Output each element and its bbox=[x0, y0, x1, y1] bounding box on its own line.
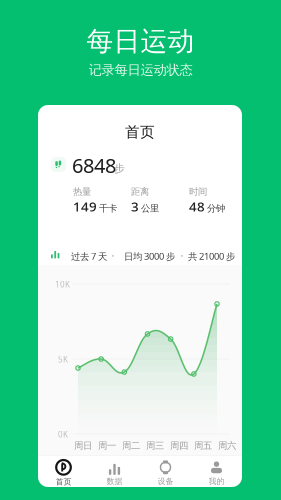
staticText: 周三 bbox=[146, 440, 164, 451]
staticText: 3 bbox=[131, 197, 139, 215]
staticText: 周日 bbox=[74, 440, 92, 451]
staticText: 时间 bbox=[189, 186, 207, 197]
button[interactable]: 首页 bbox=[38, 458, 89, 488]
staticText: 48 bbox=[189, 197, 205, 215]
staticText: 共 21000 步 bbox=[188, 250, 235, 262]
staticText: 首页 bbox=[55, 477, 71, 487]
staticText: 分钟 bbox=[207, 203, 225, 214]
staticText: 过去 7 天 bbox=[71, 250, 107, 262]
staticText: 步 bbox=[114, 162, 125, 175]
staticText: 5K bbox=[58, 354, 68, 365]
staticText: 6848 bbox=[72, 152, 116, 179]
staticText: 周五 bbox=[194, 440, 212, 451]
button[interactable]: 我的 bbox=[191, 458, 242, 488]
staticText: 数据 bbox=[106, 476, 122, 486]
staticText: 10K bbox=[55, 279, 70, 290]
button[interactable]: 数据 bbox=[89, 458, 140, 488]
staticText: 公里 bbox=[141, 203, 159, 214]
staticText: 周六 bbox=[218, 440, 236, 451]
staticText: 日均 3000 步 bbox=[124, 250, 175, 262]
staticText: 记录每日运动状态 bbox=[88, 62, 192, 78]
staticText: 每日运动 bbox=[86, 25, 194, 58]
staticText: 周二 bbox=[122, 440, 140, 451]
staticText: 距离 bbox=[131, 186, 149, 197]
staticText: 0K bbox=[58, 429, 68, 440]
staticText: 设备 bbox=[157, 476, 173, 486]
button[interactable]: 设备 bbox=[140, 458, 191, 488]
staticText: 首页 bbox=[125, 123, 155, 141]
staticText: 千卡 bbox=[99, 203, 117, 214]
staticText: 热量 bbox=[73, 186, 91, 197]
staticText: 149 bbox=[73, 197, 97, 215]
staticText: 周一 bbox=[98, 440, 116, 451]
staticText: 周四 bbox=[170, 440, 188, 451]
staticText: 我的 bbox=[208, 476, 224, 486]
